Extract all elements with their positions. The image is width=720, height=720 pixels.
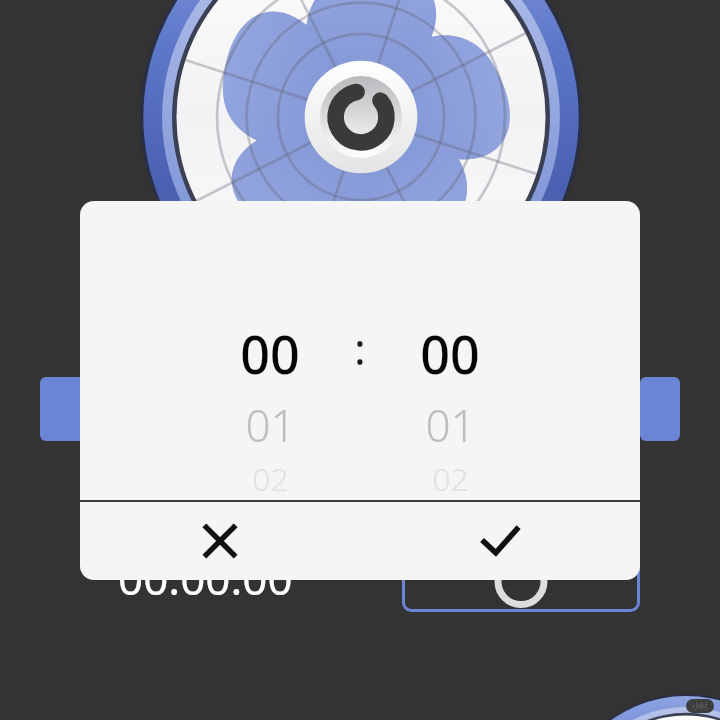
staticText: 00 [420,318,480,389]
staticText: 02 [252,457,289,500]
button[interactable]: Increase [640,377,680,441]
button[interactable]: Cancel [80,502,360,580]
staticText: 00 [240,318,300,389]
staticText: 02 [432,457,469,500]
staticText: : [354,318,366,378]
button[interactable]: Start [402,532,640,612]
staticText: 01 [425,395,476,455]
button[interactable]: Hours [80,201,330,500]
button[interactable]: Minutes [390,201,640,500]
staticText: 01 [245,395,296,455]
button[interactable]: Confirm [360,502,640,580]
button[interactable]: Decrease [40,377,96,441]
staticText: 00:00:00 [118,548,293,608]
staticText: 小时 [692,701,708,711]
